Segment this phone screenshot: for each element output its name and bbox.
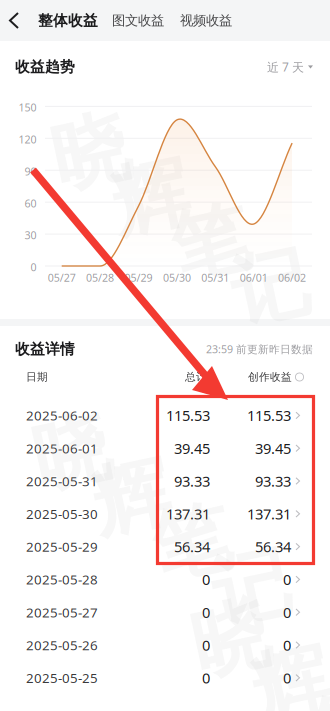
staticText: 总计 [185,370,207,384]
staticText: 晓 [51,105,128,200]
staticText: 视频收益 [180,12,232,29]
staticText: 0 [283,570,291,589]
staticText: 2025-06-01 [26,439,98,457]
staticText: 39.45 [255,438,291,458]
button[interactable]: 图文收益 [104,3,172,38]
staticText: 56.34 [174,537,210,556]
button[interactable]: 2025-05-27 [0,596,330,629]
staticText: 2025-05-27 [26,603,98,621]
button[interactable]: 2025-05-30 [0,497,330,530]
staticText: 2025-05-29 [26,538,98,555]
staticText: 93.33 [255,471,291,491]
staticText: 05/30 [163,270,191,285]
staticText: 0 [202,635,210,655]
staticText: 23:59 前更新昨日数据 [206,342,313,356]
staticText: 收益详情 [15,340,75,358]
staticText: 笔 [171,195,248,290]
staticText: 2025-05-28 [26,571,98,588]
staticText: 收益趋势 [15,58,75,76]
staticText: 2025-05-26 [26,636,98,654]
staticText: 06/01 [240,270,268,285]
staticText: 150 [18,100,36,115]
staticText: 115.53 [166,406,210,425]
staticText: 近 7 天 [267,59,304,75]
staticText: 137.31 [247,504,291,524]
staticText: 137.31 [166,504,210,524]
staticText: 日期 [26,370,48,384]
staticText: 辉 [251,637,328,711]
staticText: 93.33 [174,471,210,491]
staticText: 0 [283,635,291,655]
staticText: 05/28 [86,270,114,285]
staticText: 创作收益 [248,370,292,384]
button[interactable]: 2025-06-02 [0,399,330,432]
staticText: 2025-05-25 [26,669,98,687]
staticText: 记 [212,540,289,635]
staticText: 辉 [111,150,188,245]
staticText: 0 [202,570,210,589]
staticText: 90 [24,164,36,178]
button[interactable]: 近 7 天 [267,55,313,79]
button[interactable]: 整体收益 [32,2,104,38]
button[interactable]: 2025-05-29 [0,530,330,563]
staticText: 05/29 [124,270,152,285]
button[interactable]: 2025-05-31 [0,465,330,497]
staticText: 60 [24,196,36,210]
staticText: 晓 [191,592,268,687]
staticText: 120 [18,132,36,146]
button[interactable]: 2025-05-28 [0,563,330,596]
staticText: 0 [283,668,291,688]
staticText: 0 [283,602,291,622]
staticText: 图文收益 [112,12,164,29]
staticText: 06/02 [278,270,306,285]
staticText: 记 [231,240,308,335]
staticText: 39.45 [174,438,210,458]
staticText: 笔 [311,682,330,711]
staticText: 30 [24,228,36,242]
staticText: 56.34 [255,537,291,556]
staticText: 0 [202,602,210,622]
staticText: 整体收益 [38,11,98,29]
staticText: 0 [202,668,210,688]
button[interactable]: 视频收益 [172,3,240,38]
button[interactable]: 2025-06-01 [0,432,330,465]
button[interactable]: Back [0,1,32,40]
staticText: 0 [30,260,36,274]
button[interactable]: 2025-05-26 [0,629,330,661]
button[interactable]: 2025-05-25 [0,661,330,694]
staticText: 笔 [152,495,229,590]
staticText: 辉 [92,450,169,545]
staticText: 晓 [32,405,109,500]
staticText: 05/27 [48,270,76,285]
staticText: 05/31 [201,270,229,285]
staticText: 2025-05-31 [26,472,98,490]
staticText: 2025-06-02 [26,407,98,424]
staticText: 115.53 [247,406,291,425]
staticText: 2025-05-30 [26,505,98,523]
